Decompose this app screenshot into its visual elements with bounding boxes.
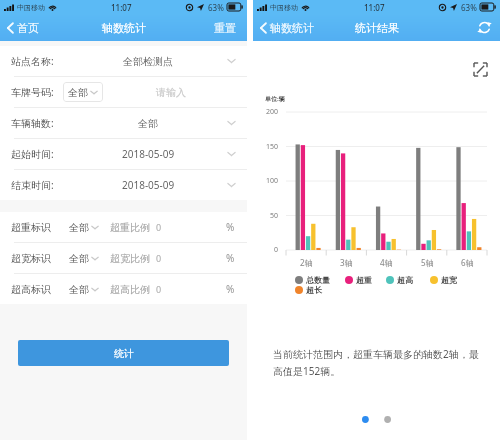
staticText: 100	[265, 176, 278, 186]
button[interactable]: 统计	[18, 340, 229, 366]
staticText: 6轴	[461, 257, 474, 268]
staticText: 全部	[69, 221, 89, 234]
staticText: 200	[265, 107, 278, 117]
staticText: 超宽	[441, 275, 457, 285]
staticText: 超重比例	[110, 221, 150, 234]
staticText: 11:07	[364, 2, 385, 13]
staticText: %	[226, 282, 235, 296]
staticText: 5轴	[421, 257, 434, 268]
staticText: 总数量	[306, 275, 330, 285]
staticText: 重置	[214, 21, 236, 35]
staticText: 超长	[306, 285, 322, 295]
staticText: %	[226, 251, 235, 265]
staticText: 轴数统计	[102, 21, 146, 35]
button[interactable]: 起始时间:	[0, 139, 247, 169]
staticText: 2018-05-09	[122, 178, 175, 192]
staticText: 2轴	[300, 257, 313, 268]
staticText: 超宽标识	[11, 252, 51, 265]
staticText: 全部	[138, 117, 158, 130]
button[interactable]: 站点名称:	[0, 46, 247, 76]
staticText: 11:07	[111, 2, 132, 13]
staticText: 统计结果	[355, 21, 399, 35]
staticText: 超重	[356, 275, 372, 285]
button[interactable]: 轴数统计	[253, 14, 320, 41]
button[interactable]: Fullscreen	[471, 60, 490, 79]
staticText: 0	[156, 283, 162, 295]
staticText: 中国移动	[270, 3, 298, 12]
button[interactable]: 首页	[0, 14, 45, 41]
button[interactable]: 车辆轴数:	[0, 108, 247, 138]
staticText: 2018-05-09	[122, 147, 175, 161]
staticText: 中国移动	[17, 3, 45, 12]
staticText: 50	[269, 211, 278, 221]
staticText: 63%	[208, 2, 224, 13]
staticText: %	[226, 220, 235, 234]
staticText: 超高比例	[110, 283, 150, 296]
staticText: 车辆轴数:	[11, 116, 54, 130]
staticText: 单位:辆	[265, 95, 285, 103]
staticText: 全部	[69, 283, 89, 296]
staticText: 3轴	[340, 257, 353, 268]
button[interactable]: 结束时间:	[0, 170, 247, 200]
staticText: 站点名称:	[11, 54, 54, 68]
staticText: 起始时间:	[11, 147, 54, 161]
staticText: 0	[273, 245, 278, 255]
button[interactable]: 请输入	[106, 86, 236, 99]
staticText: 车牌号码:	[11, 85, 54, 99]
staticText: 150	[265, 142, 278, 152]
staticText: 超高标识	[11, 283, 51, 296]
staticText: 4轴	[380, 257, 393, 268]
button[interactable]: 全部	[69, 252, 99, 265]
staticText: 全部	[68, 86, 88, 99]
staticText: 超高	[397, 275, 413, 285]
staticText: 全部检测点	[123, 55, 173, 68]
staticText: 结束时间:	[11, 178, 54, 192]
button[interactable]: 全部	[63, 82, 103, 102]
staticText: 统计	[114, 347, 134, 360]
button[interactable]: Refresh	[469, 15, 500, 40]
staticText: 当前统计范围内，超重车辆最多的轴数2轴，最高值是152辆。	[273, 347, 484, 378]
button[interactable]: 全部	[69, 283, 99, 296]
staticText: 轴数统计	[270, 21, 314, 35]
staticText: 首页	[17, 21, 39, 35]
staticText: 0	[156, 252, 162, 264]
staticText: 请输入	[156, 86, 186, 99]
staticText: 63%	[461, 2, 477, 13]
staticText: 0	[156, 221, 162, 233]
button[interactable]: 重置	[204, 15, 247, 41]
staticText: 超宽比例	[110, 252, 150, 265]
staticText: 超重标识	[11, 221, 51, 234]
staticText: 全部	[69, 252, 89, 265]
button[interactable]: 全部	[69, 221, 99, 234]
